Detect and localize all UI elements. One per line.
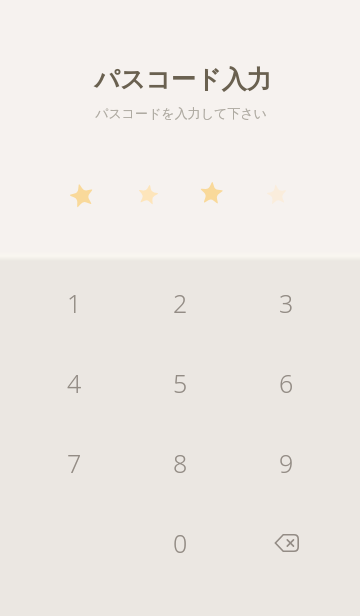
button[interactable]: Delete	[250, 507, 322, 579]
staticText: 6	[279, 366, 294, 400]
staticText: 4	[67, 366, 82, 400]
button[interactable]: 5	[144, 347, 216, 419]
staticText: パスコード入力	[94, 64, 272, 95]
button[interactable]: 0	[144, 507, 216, 579]
staticText: 7	[67, 446, 82, 480]
button[interactable]: 3	[250, 267, 322, 339]
staticText: 0	[173, 526, 188, 560]
staticText: 8	[173, 446, 188, 480]
button[interactable]: 6	[250, 347, 322, 419]
button[interactable]: 9	[250, 427, 322, 499]
staticText: 5	[173, 366, 188, 400]
button[interactable]: 1	[38, 267, 110, 339]
other: Passcode progress: 2 of 4 digits entered	[60, 176, 300, 216]
staticText: 2	[173, 286, 188, 320]
staticText: パスコードを入力して下さい	[95, 105, 267, 121]
button[interactable]: 4	[38, 347, 110, 419]
button[interactable]: 2	[144, 267, 216, 339]
staticText: 3	[279, 286, 294, 320]
button[interactable]: 8	[144, 427, 216, 499]
staticText: 1	[67, 286, 82, 320]
button[interactable]: 7	[38, 427, 110, 499]
staticText: 9	[279, 446, 294, 480]
